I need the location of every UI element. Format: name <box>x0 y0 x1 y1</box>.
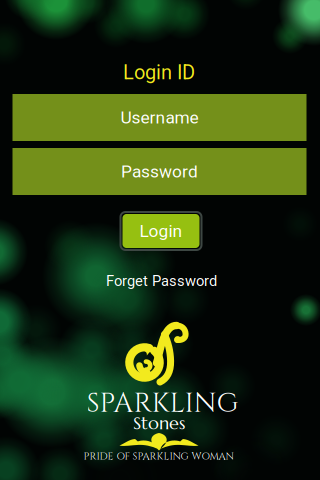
staticText: PRIDE OF SPARKLING WOMAN <box>83 450 234 463</box>
staticText: Login <box>139 221 182 241</box>
staticText: Password <box>121 161 198 182</box>
staticText: Login ID <box>123 61 195 84</box>
button[interactable]: Login <box>120 212 201 250</box>
button[interactable]: Password <box>12 148 306 195</box>
button[interactable]: Forget Password <box>101 271 221 291</box>
button[interactable]: Username <box>12 94 306 141</box>
staticText: Forget Password <box>106 272 217 290</box>
staticText: Username <box>120 107 198 128</box>
staticText: Stones <box>133 412 185 434</box>
staticText: SPARKLING <box>86 385 238 422</box>
